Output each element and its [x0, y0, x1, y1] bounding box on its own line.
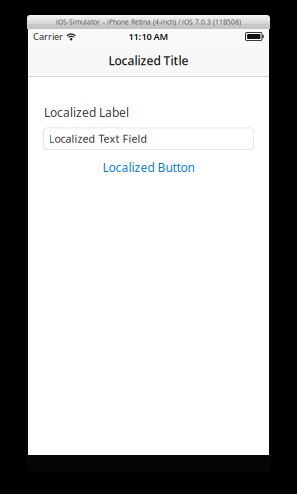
- staticText: Localized Title: [108, 52, 188, 68]
- staticText: 11:10 AM: [128, 30, 168, 43]
- staticText: Localized Text Field: [48, 132, 147, 146]
- staticText: Localized Button: [102, 159, 194, 175]
- staticText: Localized Label: [44, 104, 129, 120]
- staticText: Carrier: [33, 30, 63, 43]
- button[interactable]: Localized Text Field: [43, 128, 253, 149]
- staticText: iOS-Simulator – iPhone Retina (4-inch) /…: [56, 18, 241, 26]
- button[interactable]: Localized Button: [102, 159, 194, 175]
